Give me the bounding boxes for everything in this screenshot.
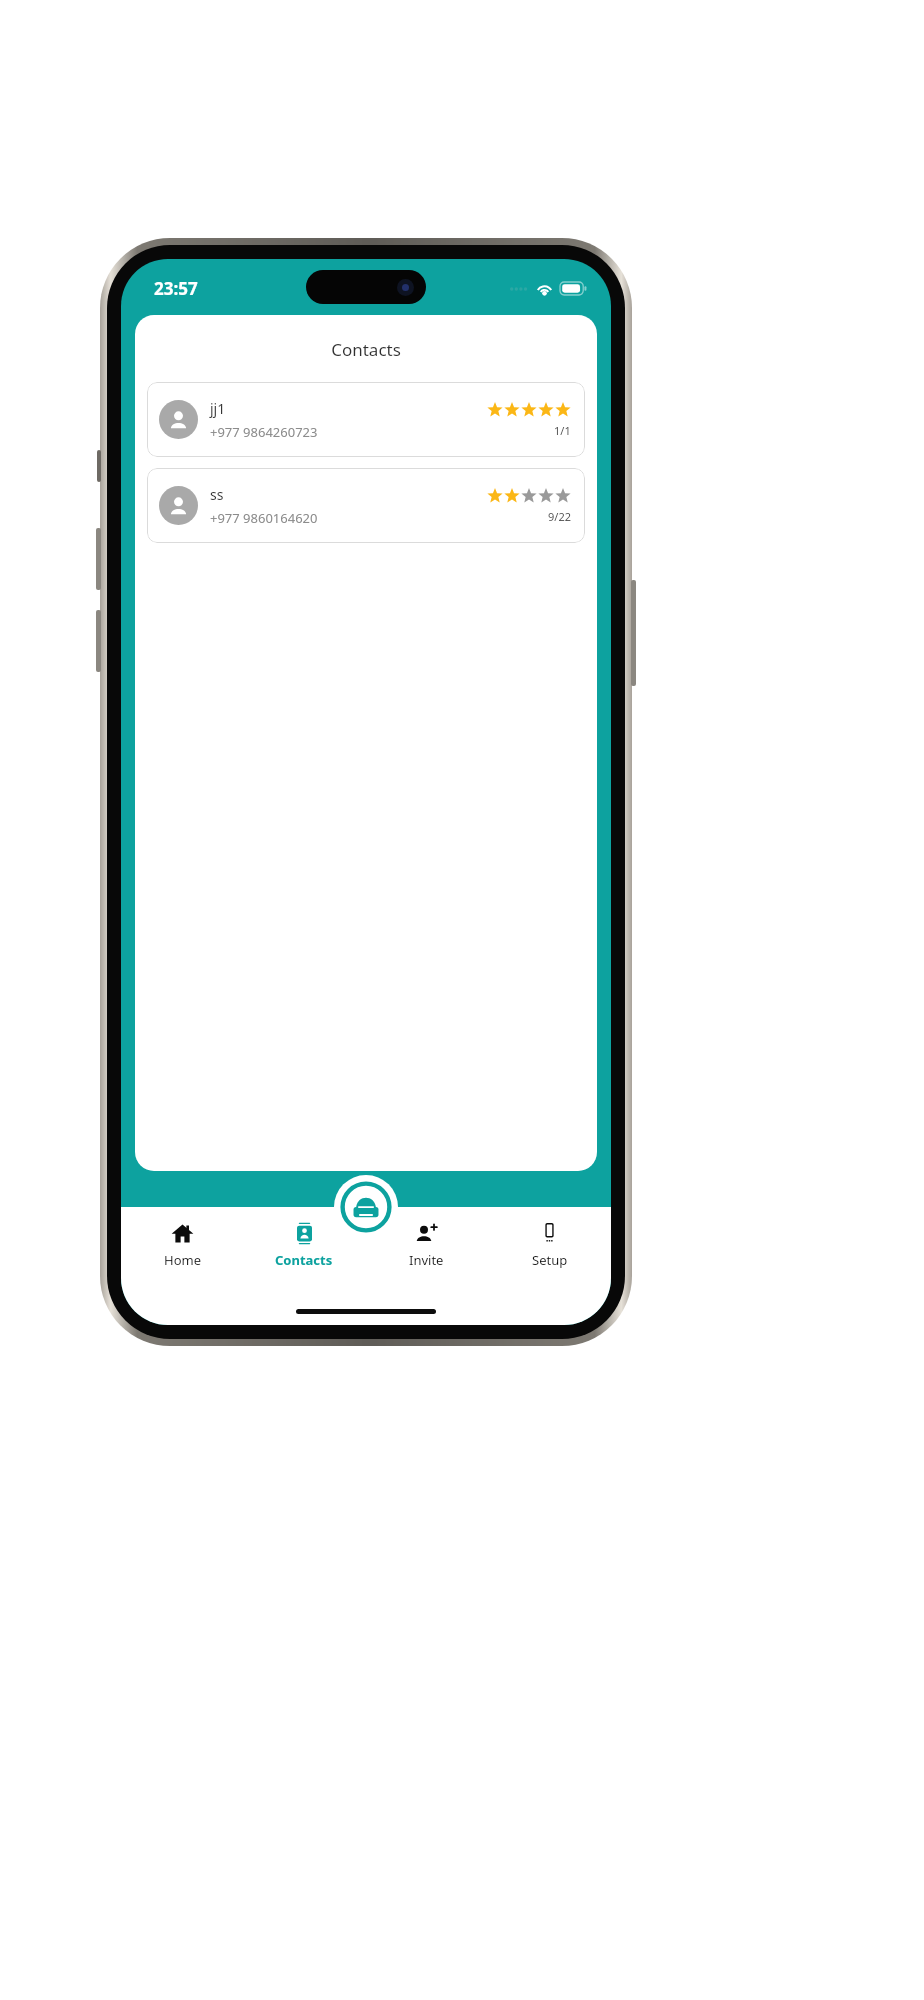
button[interactable]: Vehicle	[334, 1175, 398, 1239]
staticText: Contacts	[135, 338, 597, 361]
staticText: 9/22	[548, 509, 571, 524]
staticText: +977 9864260723	[210, 423, 318, 441]
staticText: jj1	[210, 399, 226, 418]
staticText: Setup	[532, 1251, 568, 1269]
staticText: Contacts	[275, 1251, 333, 1269]
button[interactable]: Setup	[488, 1221, 611, 1325]
staticText: 23:57	[154, 277, 198, 300]
staticText: Invite	[409, 1251, 444, 1269]
staticText: ss	[210, 485, 224, 504]
button[interactable]: jj1	[147, 382, 585, 457]
button[interactable]: Home	[121, 1221, 243, 1325]
staticText: 1/1	[554, 423, 571, 438]
button[interactable]: Invite	[365, 1221, 488, 1325]
button[interactable]: ss	[147, 468, 585, 543]
button[interactable]: Contacts	[243, 1221, 365, 1325]
staticText: Home	[164, 1251, 201, 1269]
staticText: +977 9860164620	[210, 509, 318, 527]
